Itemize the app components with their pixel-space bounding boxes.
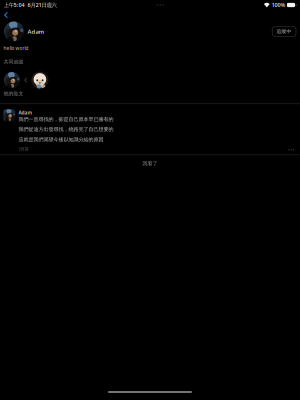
staticText: Adam [27,27,44,35]
staticText: 我看了 [142,160,157,167]
button[interactable]: 追蹤中 [272,26,296,36]
staticText: 我們從遠方出發尋找，繞路兜了自己想要的 [18,126,113,133]
staticText: Adam [18,109,32,116]
staticText: hello world [4,45,29,51]
button[interactable]: Adam [0,104,300,154]
staticText: 追蹤中 [277,28,292,34]
staticText: 上午5:04 [4,1,25,9]
staticText: 我們一直尋找的，卻是自己原本早已擁有的 [18,116,113,122]
button[interactable]: Back [1,10,11,20]
staticText: 他的貼文 [4,91,24,97]
staticText: 6月21日週六 [28,1,57,9]
staticText: 共同追蹤 [4,59,24,65]
staticText: 100% [271,1,285,9]
staticText: 這就是我們渴望今後以知識分給的原因 [18,136,103,143]
staticText: 7月前 [18,146,28,152]
